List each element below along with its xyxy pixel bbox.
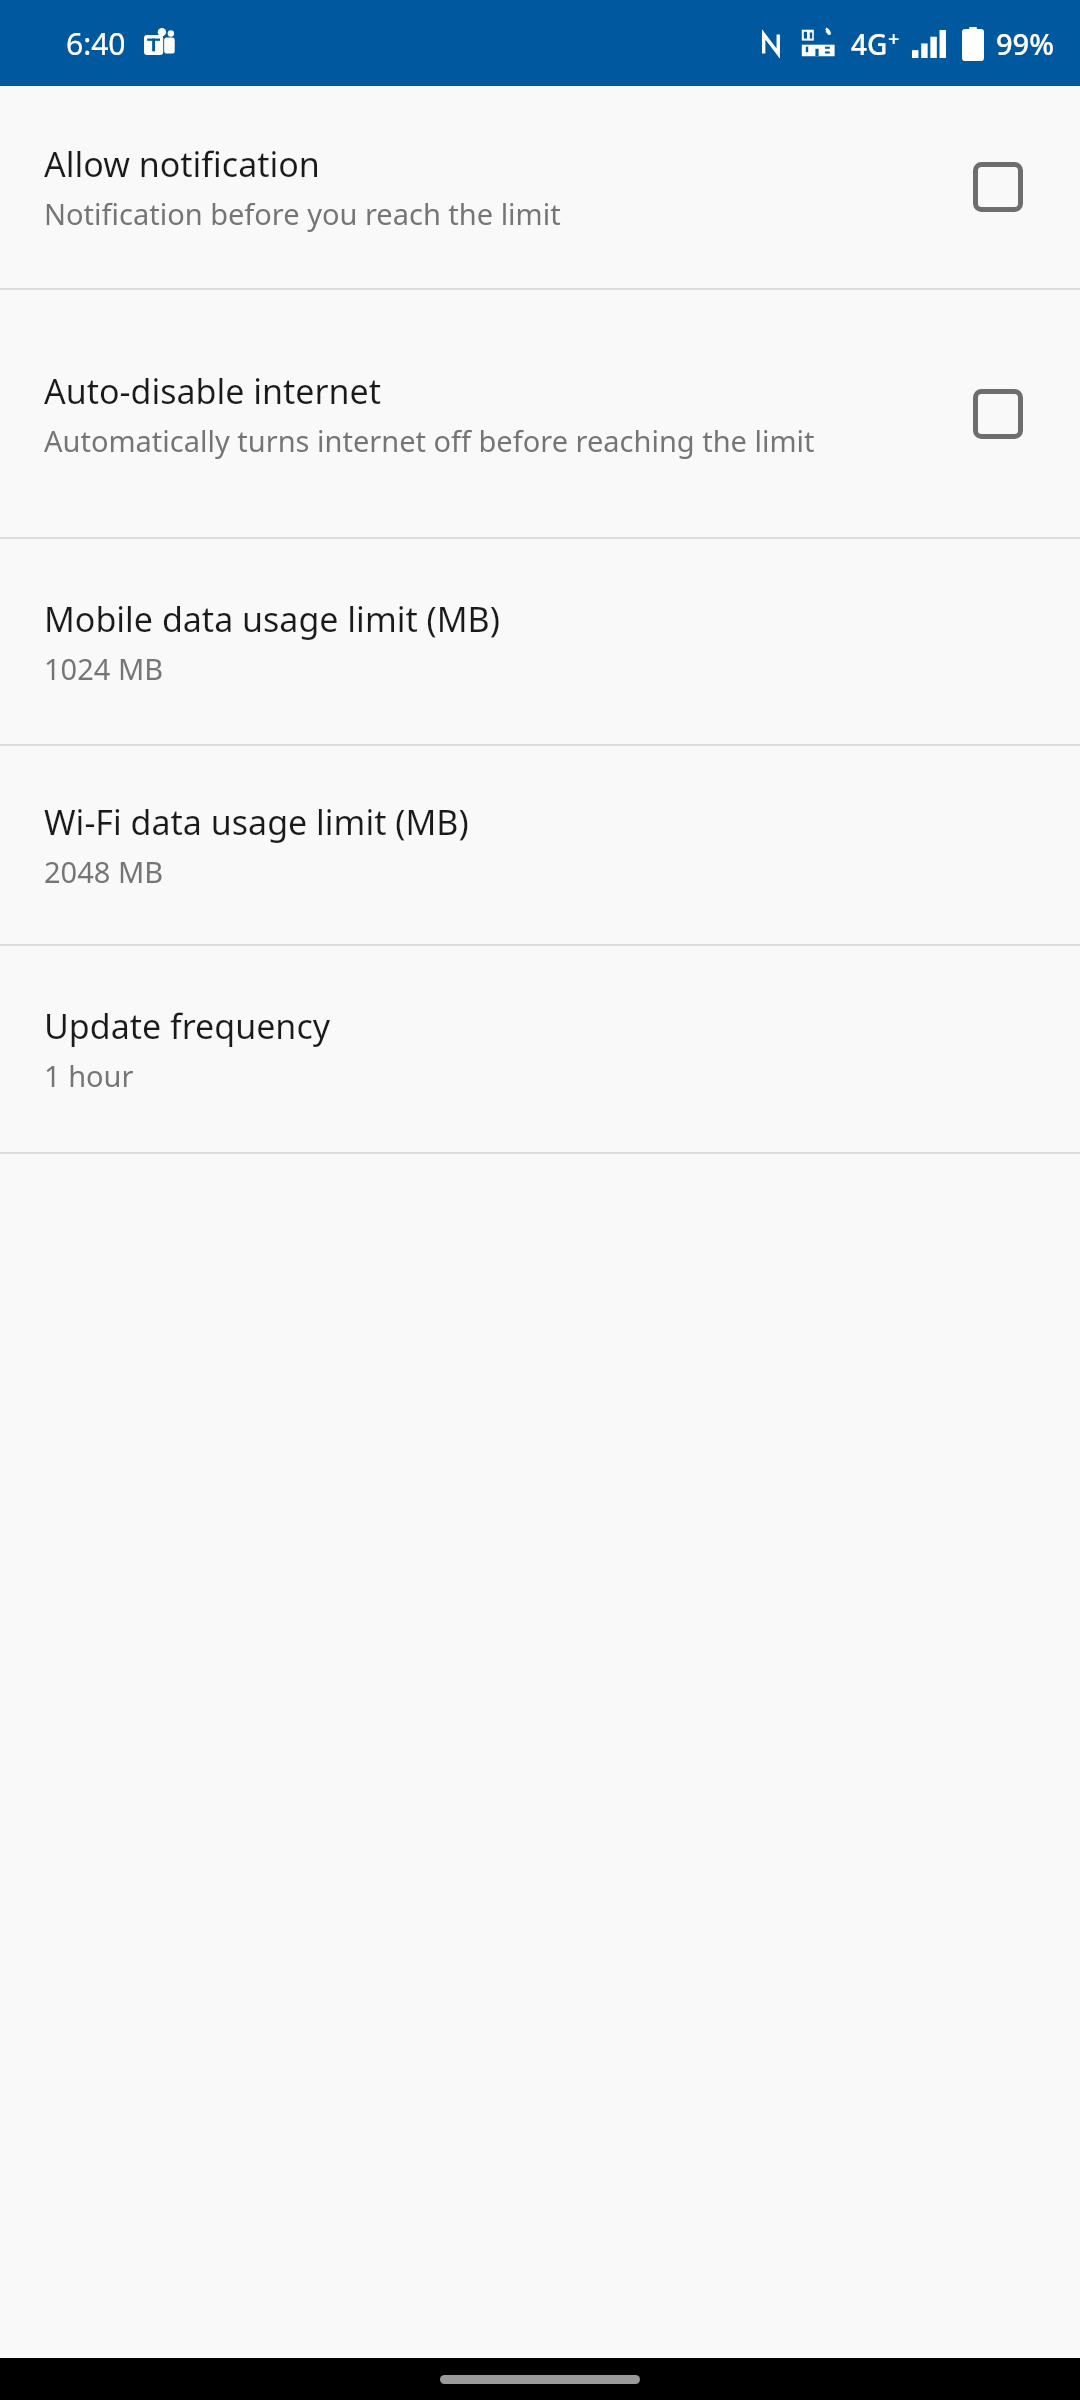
staticText: Auto-disable internet [44, 368, 382, 414]
button[interactable]: Auto-disable internet [0, 290, 1080, 537]
staticText: 1 hour [44, 1056, 134, 1095]
staticText: Mobile data usage limit (MB) [44, 596, 500, 642]
staticText: 99% [996, 24, 1054, 63]
staticText: 2048 MB [44, 852, 164, 891]
button[interactable]: Toggle Auto-disable internet [960, 376, 1036, 452]
staticText: 4G [851, 25, 888, 63]
staticText: Automatically turns internet off before … [44, 421, 815, 460]
staticText: Notification before you reach the limit [44, 194, 561, 233]
staticText: Wi-Fi data usage limit (MB) [44, 799, 469, 845]
button[interactable]: Mobile data usage limit (MB) [0, 539, 1080, 744]
button[interactable]: Toggle Allow notification [960, 149, 1036, 225]
button[interactable]: Update frequency [0, 946, 1080, 1152]
staticText: Update frequency [44, 1003, 331, 1049]
staticText: Allow notification [44, 141, 320, 187]
staticText: 1024 MB [44, 649, 164, 688]
button[interactable]: Allow notification [0, 86, 1080, 288]
button[interactable]: Wi-Fi data usage limit (MB) [0, 746, 1080, 944]
staticText: + [888, 25, 900, 52]
staticText: 6:40 [66, 23, 126, 64]
